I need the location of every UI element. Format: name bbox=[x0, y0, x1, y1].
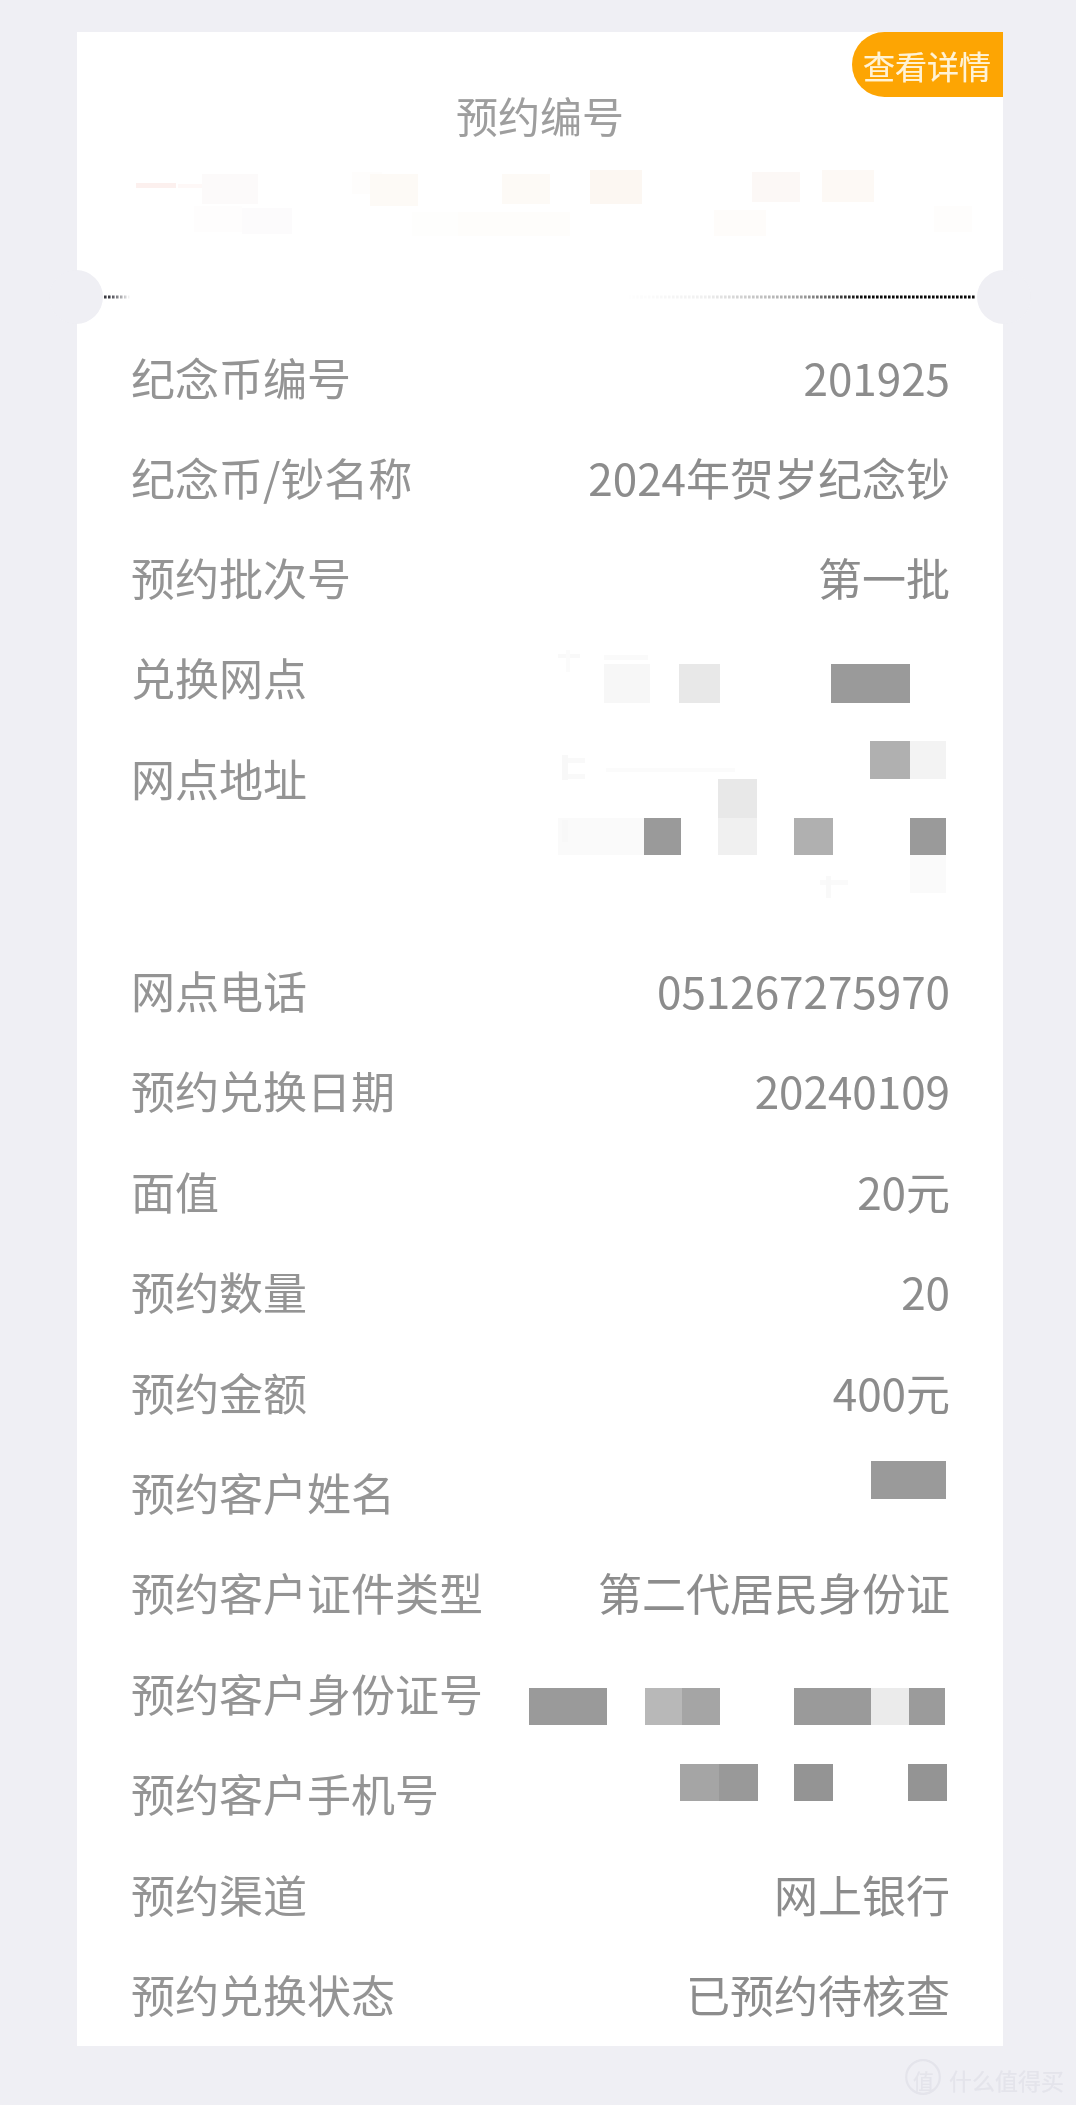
staticText: 20240109 bbox=[390, 1058, 950, 1122]
staticText: 已预约待核查 bbox=[390, 1962, 950, 2026]
staticText: 预约编号 bbox=[456, 84, 625, 145]
staticText: 预约金额 bbox=[131, 1360, 307, 1424]
staticText: 20元 bbox=[390, 1159, 950, 1223]
staticText: 预约兑换状态 bbox=[131, 1962, 395, 2026]
staticText: 预约兑换日期 bbox=[131, 1058, 395, 1122]
button[interactable]: 网点地址 bbox=[77, 728, 1003, 933]
staticText: 纪念币编号 bbox=[131, 345, 351, 409]
button[interactable]: 网点电话 bbox=[77, 941, 1003, 1041]
staticText: 预约客户姓名 bbox=[131, 1460, 395, 1524]
staticText: 兑换网点 bbox=[131, 645, 307, 709]
button[interactable]: 纪念币/钞名称 bbox=[77, 428, 1003, 528]
staticText: 网点电话 bbox=[131, 958, 307, 1022]
button[interactable]: 预约批次号 bbox=[77, 528, 1003, 628]
staticText: 第一批 bbox=[390, 545, 950, 609]
button[interactable]: 预约渠道 bbox=[77, 1845, 1003, 1945]
button[interactable]: 预约兑换状态 bbox=[77, 1945, 1003, 2045]
staticText: 网点地址 bbox=[131, 746, 307, 810]
button[interactable]: 预约兑换日期 bbox=[77, 1041, 1003, 1141]
staticText: 201925 bbox=[390, 345, 950, 409]
button[interactable]: 纪念币编号 bbox=[77, 328, 1003, 428]
staticText: 预约数量 bbox=[131, 1259, 307, 1323]
staticText: 网上银行 bbox=[390, 1862, 950, 1926]
button[interactable]: 预约金额 bbox=[77, 1343, 1003, 1443]
button[interactable]: 预约客户证件类型 bbox=[77, 1543, 1003, 1643]
button[interactable]: 查看详情 bbox=[852, 32, 1003, 97]
staticText: 预约渠道 bbox=[131, 1862, 307, 1926]
button[interactable]: 预约客户手机号 bbox=[77, 1744, 1003, 1844]
staticText: 预约客户手机号 bbox=[131, 1761, 439, 1825]
button[interactable]: 面值 bbox=[77, 1142, 1003, 1242]
staticText: 2024年贺岁纪念钞 bbox=[390, 445, 950, 509]
staticText: 400元 bbox=[390, 1360, 950, 1424]
staticText: 预约客户证件类型 bbox=[131, 1560, 483, 1624]
button[interactable]: 预约客户身份证号 bbox=[77, 1644, 1003, 1744]
staticText: 预约批次号 bbox=[131, 545, 351, 609]
staticText: 值 bbox=[913, 2065, 934, 2095]
staticText: 20 bbox=[390, 1259, 950, 1323]
staticText: 051267275970 bbox=[390, 958, 950, 1022]
staticText: 查看详情 bbox=[863, 42, 992, 88]
staticText: 面值 bbox=[131, 1159, 219, 1223]
button[interactable]: 预约客户姓名 bbox=[77, 1443, 1003, 1543]
button[interactable]: 兑换网点 bbox=[77, 628, 1003, 728]
staticText: 什么值得买 bbox=[949, 2063, 1064, 2096]
staticText: 预约客户身份证号 bbox=[131, 1661, 483, 1725]
staticText: 纪念币/钞名称 bbox=[131, 445, 413, 509]
button[interactable]: 预约数量 bbox=[77, 1242, 1003, 1342]
staticText: 第二代居民身份证 bbox=[390, 1560, 950, 1624]
